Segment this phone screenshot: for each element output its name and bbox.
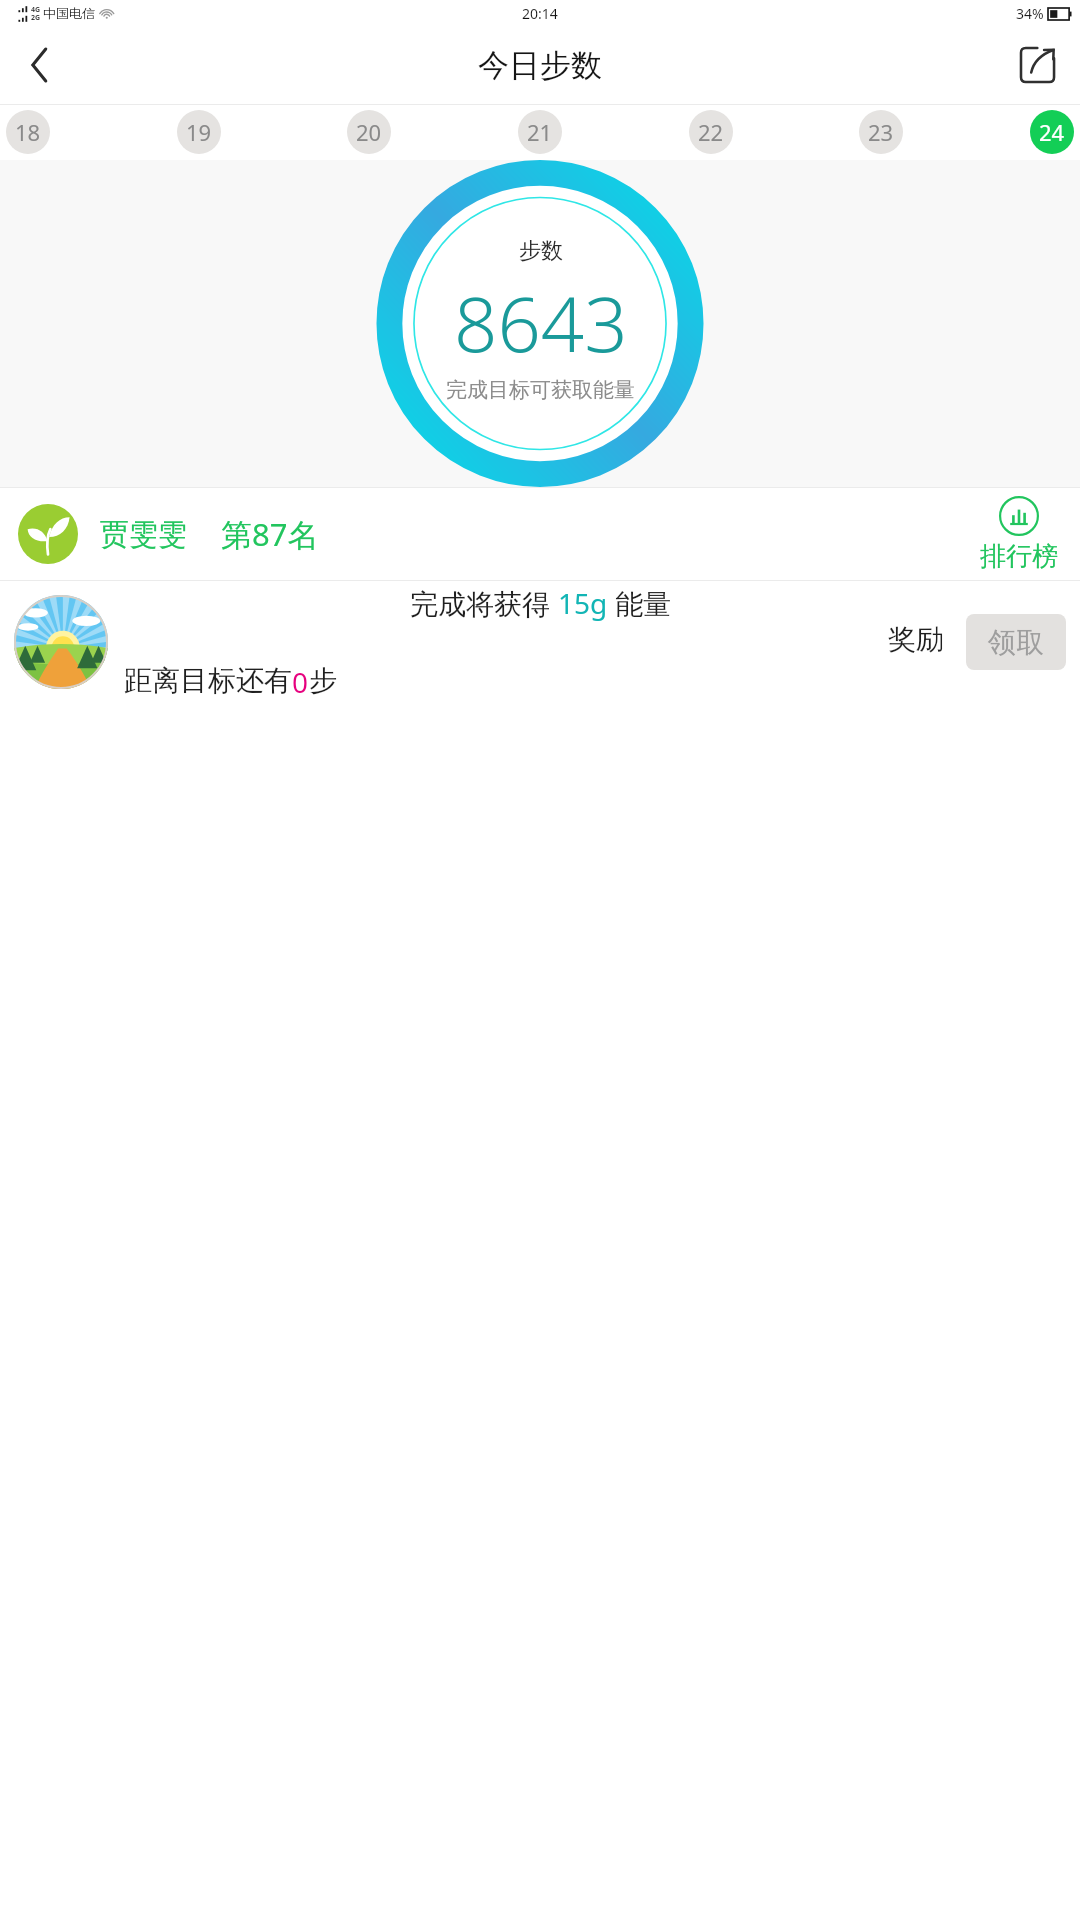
- button[interactable]: 24: [1030, 110, 1074, 154]
- staticText: 8643: [454, 271, 628, 375]
- staticText: 领取: [988, 625, 1044, 660]
- staticText: 步: [309, 663, 337, 698]
- staticText: 步数: [519, 237, 563, 265]
- button[interactable]: 领取: [966, 614, 1066, 670]
- staticText: 20: [356, 117, 382, 147]
- button[interactable]: 20: [347, 110, 391, 154]
- staticText: 23: [868, 117, 894, 147]
- staticText: 15g: [558, 584, 608, 622]
- button[interactable]: Back: [12, 37, 68, 93]
- staticText: 今日步数: [478, 46, 602, 85]
- staticText: 22: [698, 117, 724, 147]
- button[interactable]: 排行榜: [980, 496, 1058, 573]
- staticText: 34%: [1016, 4, 1044, 23]
- staticText: 距离目标还有: [124, 663, 292, 698]
- staticText: 18: [15, 117, 41, 147]
- staticText: 0: [292, 663, 309, 701]
- button[interactable]: 22: [689, 110, 733, 154]
- staticText: 4G 2G: [31, 5, 41, 22]
- button[interactable]: 21: [518, 110, 562, 154]
- button[interactable]: 贾雯雯: [0, 488, 1080, 580]
- staticText: 排行榜: [980, 540, 1058, 573]
- button[interactable]: 23: [859, 110, 903, 154]
- staticText: 19: [186, 117, 212, 147]
- staticText: 20:14: [522, 4, 558, 23]
- staticText: 奖励: [124, 622, 944, 657]
- staticText: 24: [1039, 117, 1065, 147]
- staticText: 完成目标可获取能量: [446, 377, 635, 403]
- staticText: 中国电信: [43, 5, 95, 21]
- button[interactable]: 19: [177, 110, 221, 154]
- staticText: 能量: [608, 584, 672, 622]
- staticText: 贾雯雯: [100, 516, 187, 553]
- staticText: 完成将获得: [410, 584, 558, 622]
- button[interactable]: Share: [1010, 37, 1066, 93]
- staticText: 第87名: [221, 513, 319, 555]
- staticText: 21: [527, 117, 553, 147]
- button[interactable]: 18: [6, 110, 50, 154]
